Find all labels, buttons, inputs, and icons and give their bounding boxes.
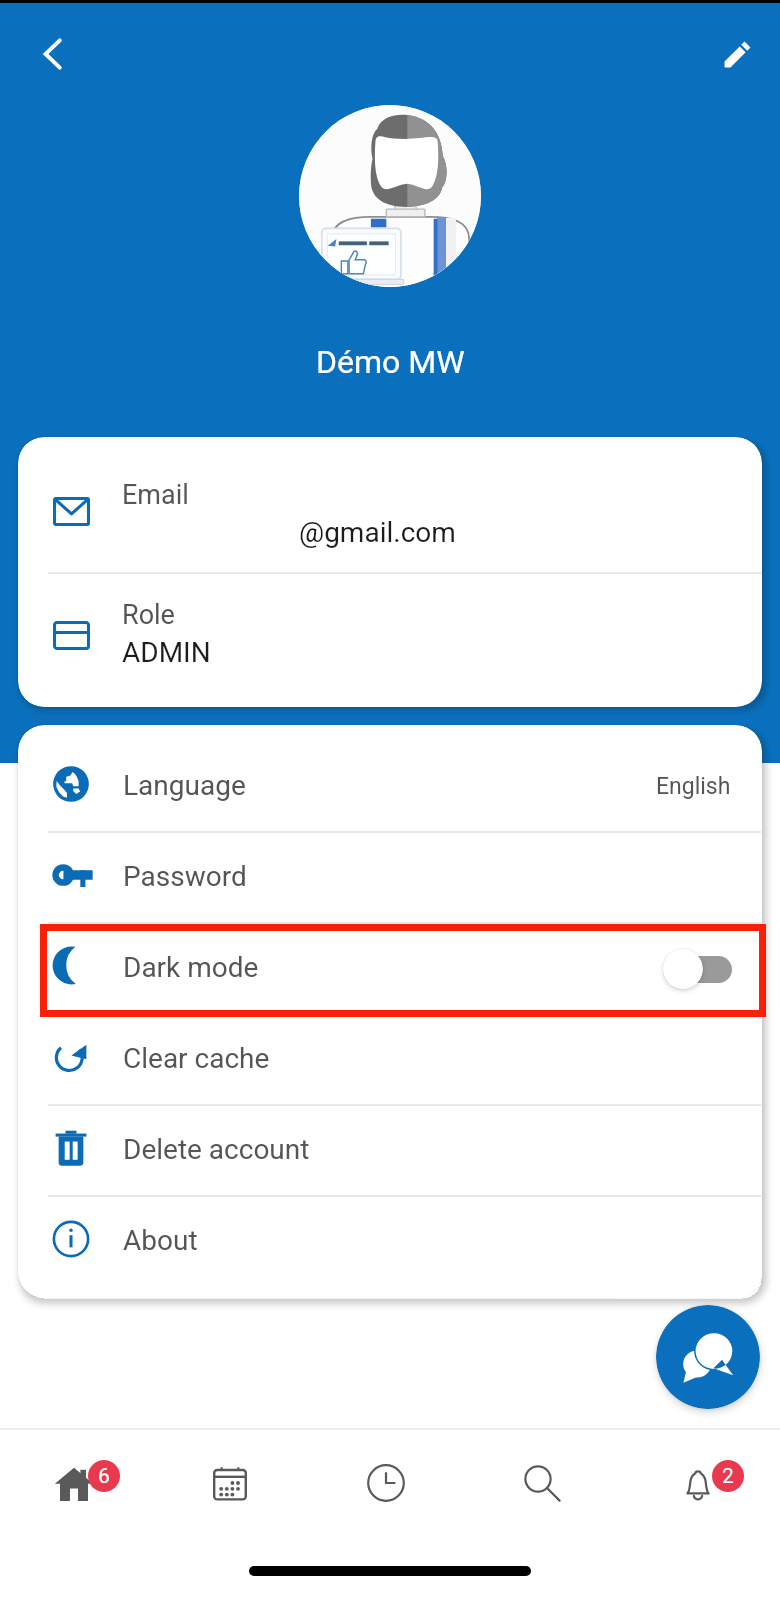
- staticText: Language: [123, 769, 246, 802]
- button[interactable]: Home: [0, 1440, 156, 1524]
- staticText: Email: [122, 479, 189, 511]
- button[interactable]: Toggle dark mode: [663, 948, 732, 990]
- staticText: Delete account: [123, 1133, 310, 1166]
- staticText: Démo MW: [316, 343, 465, 381]
- staticText: ADMIN: [122, 636, 211, 669]
- staticText: Role: [122, 599, 175, 631]
- staticText: 6: [98, 1464, 110, 1489]
- button[interactable]: Password: [18, 833, 762, 922]
- button[interactable]: Delete account: [18, 1106, 762, 1195]
- staticText: Password: [123, 860, 247, 893]
- staticText: 2: [722, 1464, 734, 1489]
- button[interactable]: Back: [23, 24, 83, 84]
- button[interactable]: Chat: [656, 1305, 760, 1409]
- staticText: Dark mode: [123, 951, 259, 984]
- button[interactable]: Language: [18, 742, 762, 831]
- button[interactable]: History: [312, 1440, 468, 1524]
- button[interactable]: Email: [18, 437, 762, 572]
- staticText: English: [656, 773, 731, 800]
- button[interactable]: Clear cache: [18, 1015, 762, 1104]
- button[interactable]: Edit: [707, 24, 767, 84]
- button[interactable]: Role: [18, 574, 762, 707]
- button[interactable]: Search: [468, 1440, 624, 1524]
- button[interactable]: Calendar: [156, 1440, 312, 1524]
- staticText: About: [123, 1224, 198, 1257]
- button[interactable]: About: [18, 1197, 762, 1286]
- staticText: Clear cache: [123, 1042, 270, 1075]
- button[interactable]: Dark mode: [18, 924, 762, 1013]
- button[interactable]: Notifications: [624, 1440, 780, 1524]
- staticText: @gmail.com: [299, 516, 456, 549]
